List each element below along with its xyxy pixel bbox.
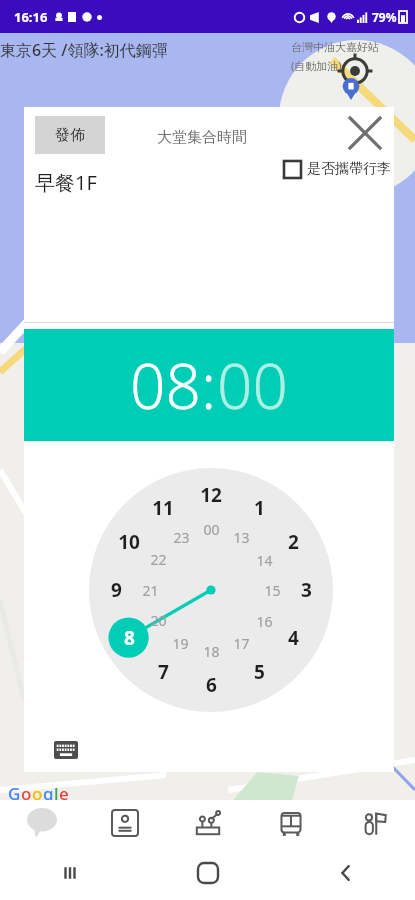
staticText: 11: [152, 495, 174, 521]
staticText: 6: [206, 672, 217, 698]
staticText: e: [59, 782, 69, 805]
staticText: 21: [142, 581, 159, 600]
staticText: 18: [203, 642, 220, 661]
button[interactable]: Close: [341, 109, 389, 157]
button[interactable]: Bus: [249, 800, 332, 845]
staticText: 16:16: [14, 8, 48, 26]
staticText: (自動加油): [291, 58, 342, 73]
staticText: G: [8, 782, 21, 805]
staticText: 14: [256, 551, 273, 570]
button[interactable]: Back: [277, 845, 415, 900]
button[interactable]: 00: [217, 343, 288, 427]
button[interactable]: 08: [130, 343, 201, 427]
staticText: 17: [233, 634, 250, 653]
staticText: 7: [158, 659, 169, 685]
button[interactable]: Switch to text input: [51, 735, 81, 765]
button[interactable]: Documents: [83, 800, 166, 845]
staticText: 4: [288, 625, 299, 651]
staticText: 台灣中油大嘉好站: [291, 40, 379, 54]
staticText: 10: [118, 529, 140, 555]
staticText: 23: [173, 528, 190, 547]
button[interactable]: Itinerary: [166, 800, 249, 845]
staticText: 20: [150, 611, 167, 630]
staticText: 8: [124, 625, 135, 651]
staticText: l: [54, 782, 59, 805]
button[interactable]: 是否攜帶行李: [284, 160, 391, 178]
staticText: 19: [172, 634, 189, 653]
staticText: 東京6天 /領隊:初代鋼彈: [0, 39, 168, 61]
staticText: :: [201, 343, 217, 427]
staticText: 1: [254, 495, 265, 521]
staticText: 08: [130, 343, 201, 427]
staticText: 發佈: [55, 126, 85, 145]
staticText: 22: [150, 550, 167, 569]
staticText: 9: [111, 577, 122, 603]
staticText: 00: [217, 343, 288, 427]
staticText: 3: [301, 577, 312, 603]
staticText: o: [32, 782, 43, 805]
button[interactable]: My location: [336, 52, 374, 90]
staticText: o: [21, 782, 32, 805]
staticText: g: [43, 782, 54, 805]
button[interactable]: 發佈: [35, 116, 105, 154]
staticText: 是否攜帶行李: [307, 160, 391, 178]
button[interactable]: 12: [89, 468, 333, 712]
staticText: 15: [264, 581, 281, 600]
staticText: 2: [288, 529, 299, 555]
staticText: 早餐1F: [35, 169, 97, 196]
button[interactable]: Home: [139, 845, 277, 900]
button[interactable]: Recents: [0, 845, 139, 900]
staticText: 16: [256, 612, 273, 631]
staticText: 5: [254, 659, 265, 685]
button[interactable]: Chat: [0, 800, 83, 845]
staticText: 79%: [372, 9, 397, 25]
staticText: 大堂集合時間: [157, 128, 247, 147]
staticText: 13: [233, 528, 250, 547]
button[interactable]: Guide: [332, 800, 415, 845]
staticText: 00: [203, 520, 220, 539]
staticText: 12: [200, 482, 222, 508]
